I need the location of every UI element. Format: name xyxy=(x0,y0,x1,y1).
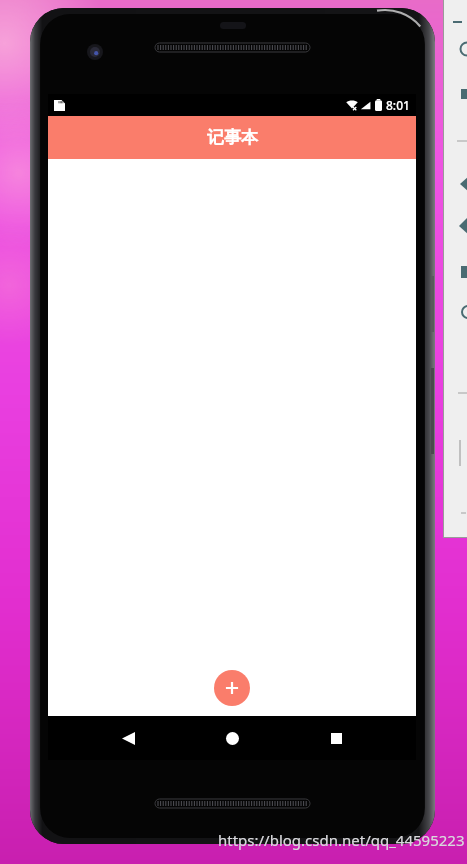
staticText: 8:01 xyxy=(386,97,410,113)
button[interactable]: Recent apps xyxy=(318,720,354,756)
button[interactable]: Add note xyxy=(214,670,250,706)
staticText: 记事本 xyxy=(207,127,258,148)
button[interactable]: Back xyxy=(110,720,146,756)
staticText: https://blog.csdn.net/qq_44595223 xyxy=(218,830,465,850)
button[interactable]: 记事本 xyxy=(48,116,416,159)
button[interactable]: Home xyxy=(214,720,250,756)
